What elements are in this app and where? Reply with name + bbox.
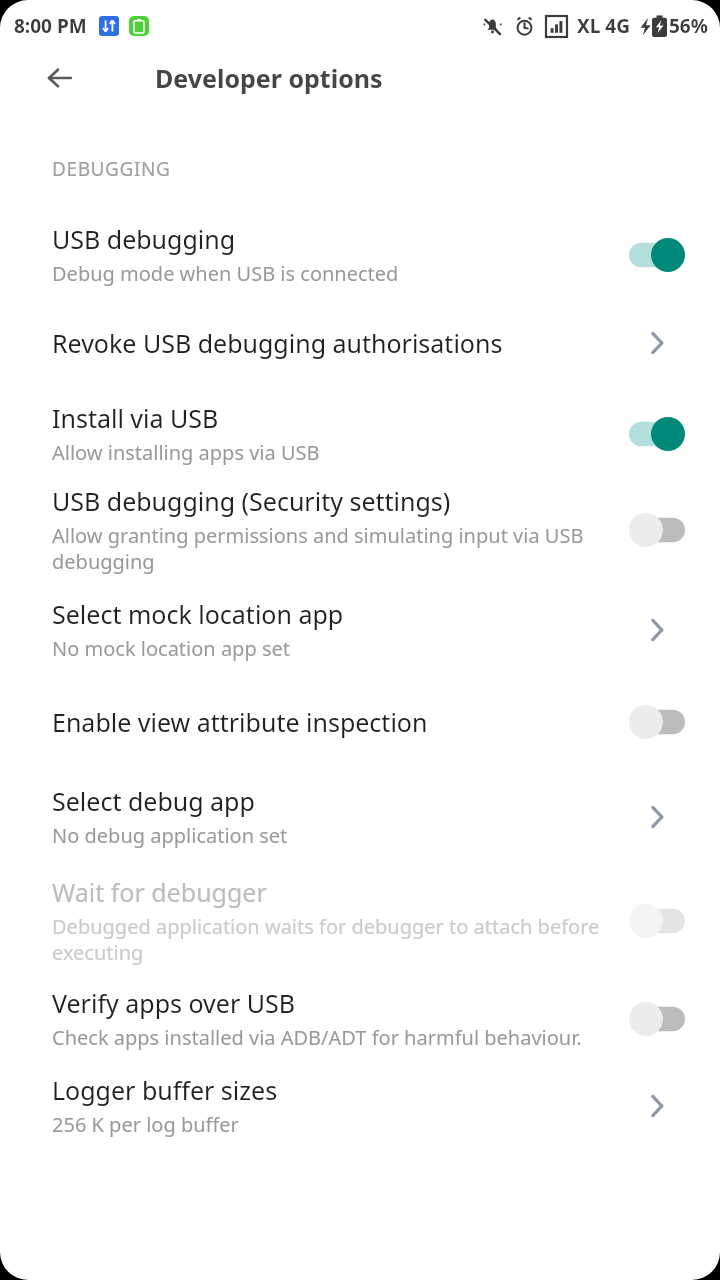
button[interactable]: Verify apps over USB xyxy=(0,982,720,1055)
staticText: Debug mode when USB is connected xyxy=(52,260,399,287)
staticText: Verify apps over USB xyxy=(52,986,295,1020)
button[interactable]: Wait for debugger xyxy=(0,871,720,970)
button[interactable]: USB debugging (Security settings) xyxy=(0,480,720,579)
staticText: Install via USB xyxy=(52,401,219,435)
button[interactable]: Install via USB xyxy=(0,397,720,470)
staticText: Check apps installed via ADB/ADT for har… xyxy=(52,1024,582,1051)
staticText: No debug application set xyxy=(52,822,288,849)
staticText: XL 4G xyxy=(577,13,630,39)
staticText: USB debugging (Security settings) xyxy=(52,484,451,518)
staticText: Allow granting permissions and simulatin… xyxy=(52,522,602,575)
staticText: 8:00 PM xyxy=(14,13,87,39)
staticText: Wait for debugger xyxy=(52,875,267,909)
staticText: DEBUGGING xyxy=(52,156,171,182)
staticText: Allow installing apps via USB xyxy=(52,439,320,466)
staticText: Debugged application waits for debugger … xyxy=(52,913,602,966)
staticText: Revoke USB debugging authorisations xyxy=(52,326,503,360)
button[interactable]: Select debug app xyxy=(0,780,720,853)
staticText: Developer options xyxy=(155,61,383,95)
staticText: 56% xyxy=(669,13,708,39)
staticText: Logger buffer sizes xyxy=(52,1073,278,1107)
button[interactable]: Revoke USB debugging authorisations xyxy=(0,317,720,369)
staticText: 256 K per log buffer xyxy=(52,1111,239,1138)
button[interactable]: Logger buffer sizes xyxy=(0,1069,720,1142)
staticText: No mock location app set xyxy=(52,635,290,662)
staticText: Select mock location app xyxy=(52,597,344,631)
button[interactable]: Select mock location app xyxy=(0,593,720,666)
button[interactable]: Back xyxy=(36,54,84,102)
staticText: Select debug app xyxy=(52,784,255,818)
staticText: USB debugging xyxy=(52,222,236,256)
button[interactable]: USB debugging xyxy=(0,218,720,291)
button[interactable]: Enable view attribute inspection xyxy=(0,696,720,748)
staticText: Enable view attribute inspection xyxy=(52,705,428,739)
